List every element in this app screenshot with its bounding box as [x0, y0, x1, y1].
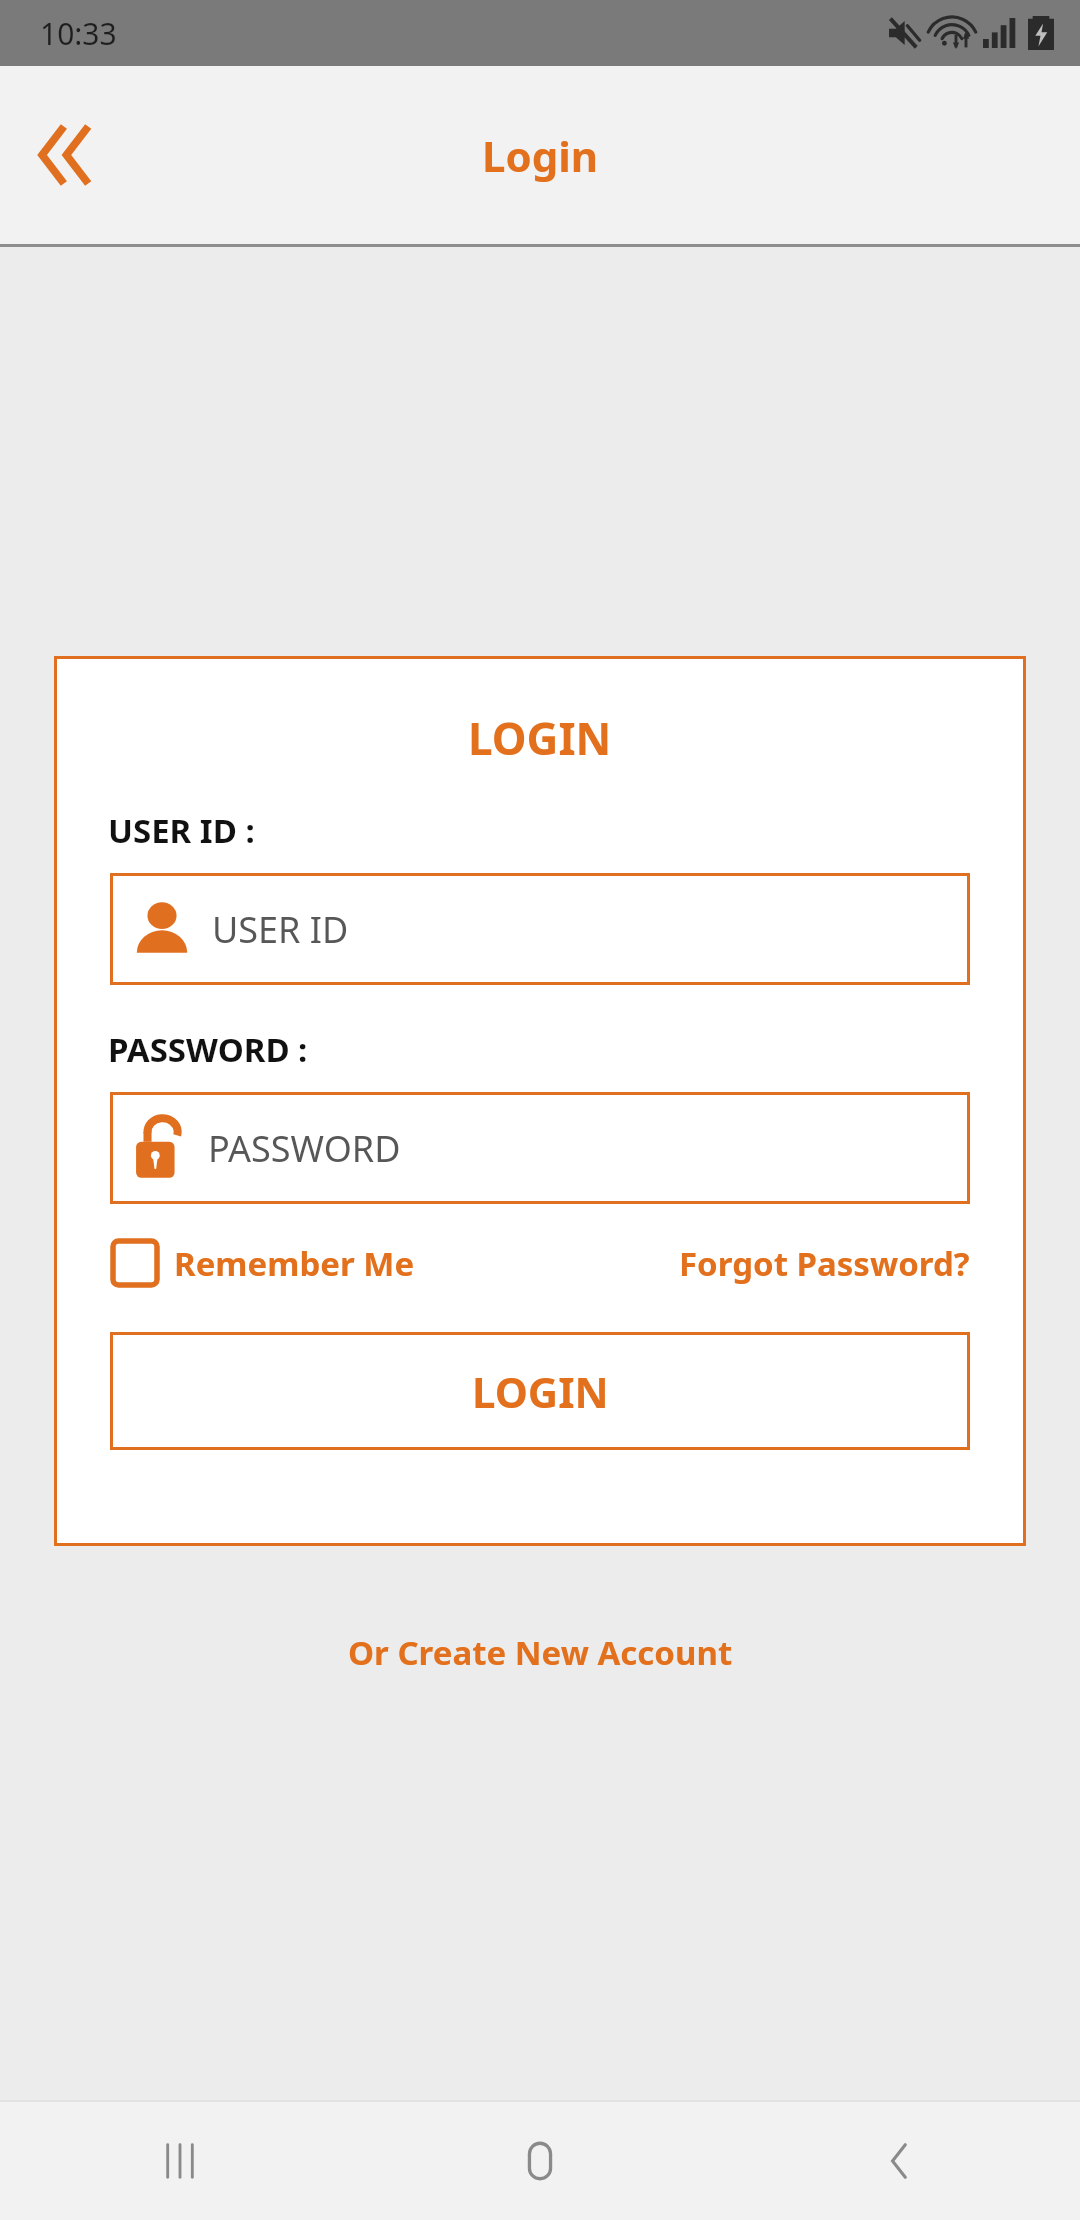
staticText: LOGIN — [468, 708, 612, 768]
button[interactable]: Recents — [0, 2102, 360, 2220]
button[interactable]: Back — [720, 2102, 1080, 2220]
staticText: 10:33 — [40, 13, 117, 54]
button[interactable]: LOGIN — [110, 1332, 970, 1450]
staticText: PASSWORD — [208, 1124, 401, 1173]
staticText: USER ID — [212, 905, 349, 954]
button[interactable]: USER ID — [110, 873, 970, 985]
staticText: LOGIN — [472, 1363, 609, 1420]
button[interactable]: PASSWORD — [110, 1092, 970, 1204]
staticText: Or Create New Account — [348, 1630, 733, 1675]
staticText: Login — [482, 127, 599, 184]
staticText: Forgot Password? — [679, 1241, 970, 1286]
staticText: USER ID : — [108, 808, 255, 853]
button[interactable]: Forgot Password? — [679, 1241, 970, 1286]
button[interactable]: Home — [360, 2102, 720, 2220]
button[interactable]: Or Create New Account — [0, 1624, 1080, 1681]
staticText: PASSWORD : — [108, 1027, 308, 1072]
staticText: Remember Me — [174, 1241, 415, 1286]
button[interactable]: Back — [22, 108, 116, 202]
button[interactable]: Remember Me — [110, 1238, 415, 1288]
